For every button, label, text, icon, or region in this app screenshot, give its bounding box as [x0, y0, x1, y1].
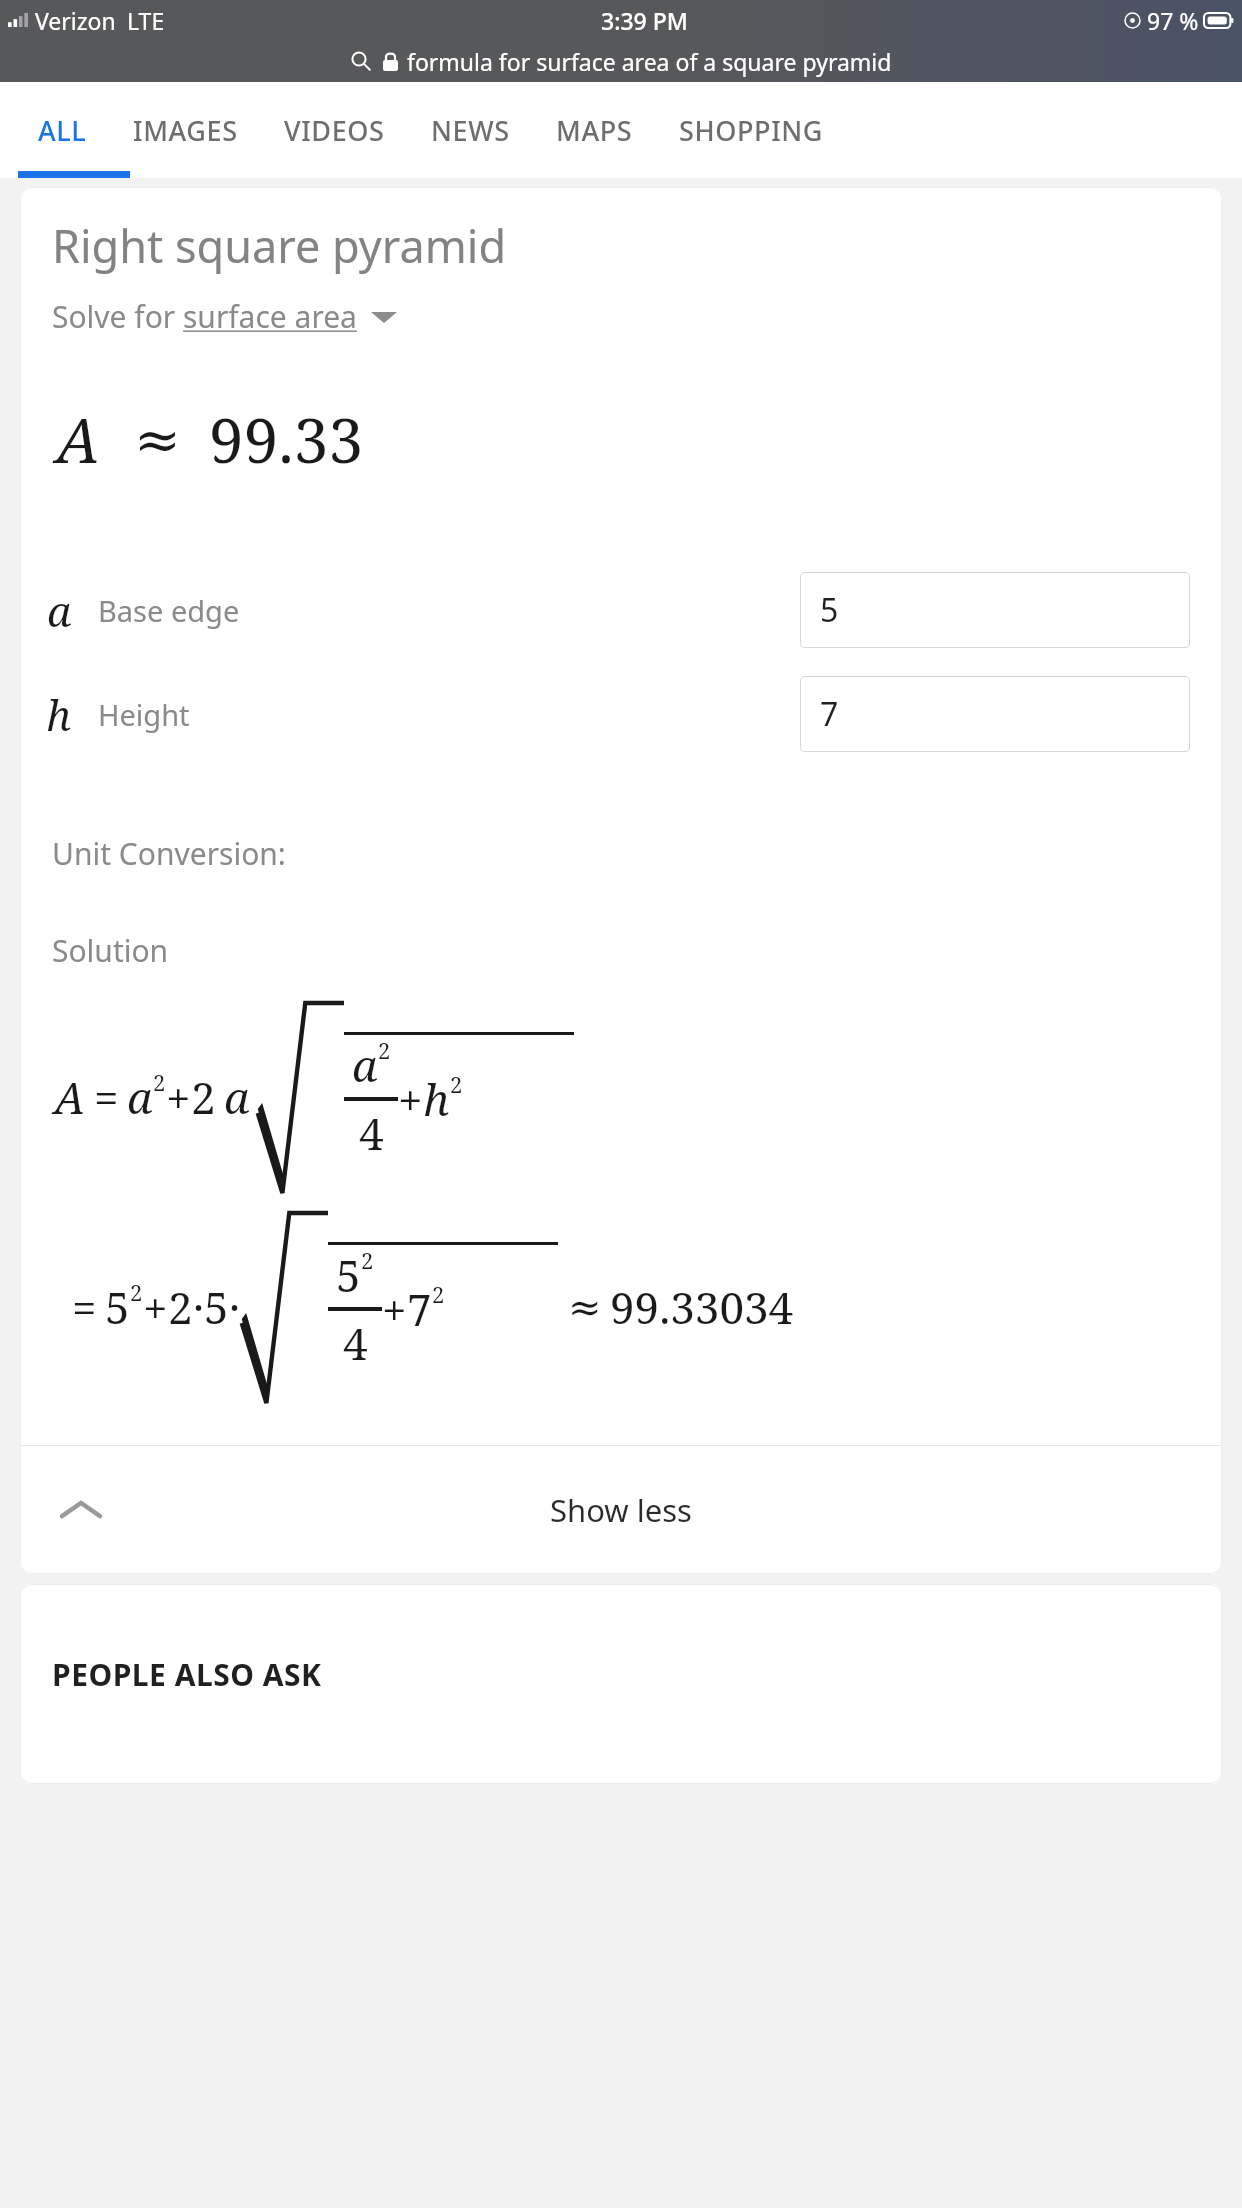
staticText: Base edge [98, 591, 240, 630]
button[interactable]: formula for surface area of a square pyr… [0, 40, 1242, 82]
staticText: VIDEOS [284, 112, 385, 149]
staticText: 5 [204, 1277, 229, 1337]
staticText: 5 [820, 588, 839, 632]
staticText: 97 % [1147, 5, 1199, 36]
staticText: Right square pyramid [52, 215, 507, 276]
staticText: 2 [432, 1279, 445, 1309]
staticText: a [47, 582, 72, 639]
staticText: + [398, 1069, 423, 1129]
button[interactable]: VIDEOS [264, 82, 405, 178]
staticText: = [72, 1277, 97, 1337]
staticText: + [166, 1067, 191, 1127]
staticText: 2 [450, 1069, 463, 1099]
staticText: h [423, 1069, 450, 1129]
staticText: 3:39 PM [601, 5, 688, 36]
staticText: PEOPLE ALSO ASK [52, 1654, 322, 1695]
staticText: ALL [38, 112, 87, 149]
staticText: 2 [361, 1245, 374, 1275]
staticText: 7 [407, 1279, 432, 1339]
staticText: Height [98, 695, 190, 734]
staticText: surface area [183, 296, 357, 337]
staticText: LTE [127, 5, 165, 36]
staticText: 2 [153, 1067, 166, 1097]
staticText: 2 [191, 1067, 216, 1127]
staticText: 5 [105, 1277, 130, 1337]
staticText: A [54, 1067, 86, 1127]
staticText: a [224, 1067, 250, 1127]
button[interactable]: IMAGES [113, 82, 258, 178]
staticText: ≈ [568, 1284, 602, 1331]
staticText: a [127, 1067, 153, 1127]
staticText: A [56, 397, 100, 481]
staticText: 2 [130, 1277, 143, 1307]
staticText: Show less [550, 1489, 692, 1531]
staticText: 99.33 [209, 397, 364, 481]
staticText: · [229, 1277, 240, 1337]
staticText: NEWS [431, 112, 510, 149]
button[interactable]: Show less [20, 1446, 1222, 1574]
staticText: Solve for [52, 296, 183, 337]
staticText: 4 [343, 1313, 368, 1373]
button[interactable]: MAPS [536, 82, 653, 178]
staticText: Verizon [35, 5, 116, 36]
staticText: · [193, 1277, 204, 1337]
staticText: 2 [378, 1035, 391, 1065]
button[interactable]: SHOPPING [659, 82, 844, 178]
staticText: formula for surface area of a square pyr… [407, 46, 892, 77]
staticText: IMAGES [133, 112, 238, 149]
staticText: ≈ [134, 407, 181, 472]
staticText: MAPS [556, 112, 633, 149]
staticText: 4 [359, 1103, 384, 1163]
staticText: + [143, 1277, 168, 1337]
button[interactable]: ALL [18, 82, 107, 178]
staticText: Solution [52, 930, 169, 971]
staticText: a [352, 1035, 378, 1095]
staticText: Unit Conversion: [52, 833, 286, 874]
button[interactable]: surface area [183, 296, 397, 337]
staticText: 5 [336, 1245, 361, 1305]
staticText: 99.33034 [610, 1277, 794, 1337]
staticText: h [46, 686, 72, 743]
button[interactable]: 7 [800, 676, 1190, 752]
staticText: 7 [820, 692, 839, 736]
button[interactable]: NEWS [411, 82, 530, 178]
staticText: 2 [168, 1277, 193, 1337]
staticText: SHOPPING [679, 112, 824, 149]
button[interactable]: 5 [800, 572, 1190, 648]
staticText: = [94, 1067, 119, 1127]
staticText: + [382, 1279, 407, 1339]
